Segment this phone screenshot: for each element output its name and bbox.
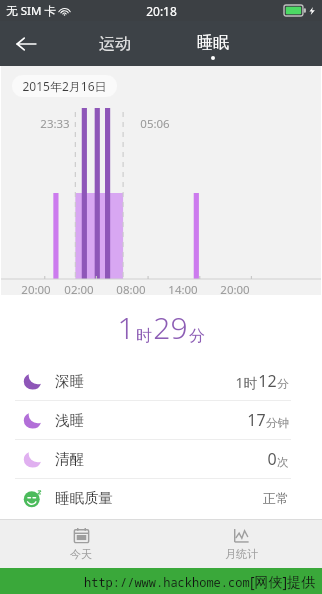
staticText: 正常: [263, 490, 289, 506]
staticText: 分: [189, 326, 205, 346]
staticText: 20:00: [220, 282, 250, 295]
staticText: 29: [153, 307, 188, 348]
staticText: 次: [277, 455, 289, 469]
button[interactable]: 浅睡: [1, 401, 321, 439]
staticText: 20:00: [21, 282, 51, 295]
staticText: 1: [117, 307, 135, 348]
staticText: 睡眠质量: [55, 489, 113, 507]
button[interactable]: 深睡: [1, 362, 321, 400]
button[interactable]: 睡眠: [178, 21, 248, 66]
staticText: 深睡: [55, 372, 84, 390]
staticText: 睡眠: [197, 33, 229, 53]
staticText: 23:33: [40, 116, 70, 132]
staticText: [网侠]提供: [250, 572, 316, 591]
button[interactable]: 清醒: [1, 440, 321, 478]
staticText: 运动: [99, 34, 131, 54]
button[interactable]: 睡眠质量: [1, 479, 321, 517]
staticText: 2015年2月16日: [22, 78, 107, 94]
staticText: 02:00: [64, 282, 94, 295]
staticText: 12: [258, 370, 277, 392]
staticText: 20:18: [146, 3, 177, 19]
staticText: 无 SIM 卡: [6, 3, 56, 19]
staticText: 0: [267, 448, 277, 470]
button[interactable]: 月统计: [161, 520, 321, 568]
staticText: http://www.hackhome.com: [84, 574, 250, 590]
staticText: 08:00: [116, 282, 146, 295]
staticText: 17: [247, 409, 266, 431]
staticText: 1时: [235, 373, 258, 392]
staticText: 14:00: [168, 282, 198, 295]
staticText: 分钟: [266, 416, 289, 430]
staticText: 时: [136, 326, 152, 346]
button[interactable]: Back: [0, 21, 52, 66]
staticText: 今天: [70, 547, 92, 561]
staticText: 清醒: [55, 450, 84, 468]
staticText: 浅睡: [55, 411, 84, 429]
staticText: 05:06: [140, 116, 170, 132]
staticText: 月统计: [225, 547, 258, 561]
button[interactable]: 今天: [1, 520, 161, 568]
button[interactable]: 2015年2月16日: [12, 75, 117, 97]
button[interactable]: 运动: [80, 21, 150, 66]
staticText: 分: [277, 377, 289, 391]
